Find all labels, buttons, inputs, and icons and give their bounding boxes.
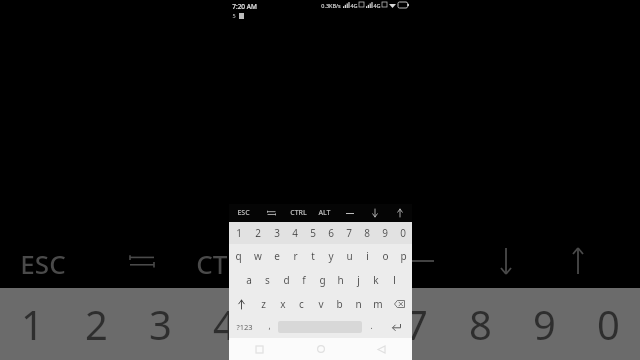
button[interactable]: 1 bbox=[229, 222, 248, 244]
button[interactable]: c bbox=[292, 292, 311, 316]
staticText: 4 bbox=[292, 226, 298, 240]
staticText: t bbox=[311, 249, 315, 263]
staticText: 5 bbox=[277, 297, 300, 351]
button[interactable]: b bbox=[330, 292, 349, 316]
button[interactable]: m bbox=[368, 292, 387, 316]
staticText: , bbox=[268, 320, 271, 331]
button[interactable]: d bbox=[277, 268, 295, 292]
button[interactable]: i bbox=[358, 244, 376, 268]
staticText: l bbox=[393, 273, 396, 287]
button[interactable]: 6 bbox=[322, 222, 340, 244]
button[interactable]: t bbox=[304, 244, 322, 268]
button[interactable]: w bbox=[248, 244, 267, 268]
button[interactable]: 9 bbox=[376, 222, 394, 244]
staticText: n bbox=[355, 297, 362, 311]
staticText: 4 bbox=[213, 297, 236, 351]
button[interactable]: o bbox=[376, 244, 394, 268]
staticText: e bbox=[274, 249, 280, 263]
button[interactable]: n bbox=[349, 292, 368, 316]
button[interactable]: k bbox=[367, 268, 385, 292]
button[interactable]: e bbox=[267, 244, 286, 268]
staticText: CTRL bbox=[196, 246, 258, 281]
button[interactable]: l bbox=[385, 268, 403, 292]
staticText: i bbox=[366, 249, 369, 263]
button[interactable]: Home bbox=[290, 338, 351, 360]
staticText: g bbox=[319, 273, 326, 287]
button[interactable]: q bbox=[229, 244, 248, 268]
button[interactable]: 5 bbox=[304, 222, 322, 244]
button[interactable]: CTRL bbox=[284, 204, 312, 222]
button[interactable]: ALT bbox=[312, 204, 337, 222]
staticText: 4G bbox=[350, 2, 358, 9]
button[interactable]: j bbox=[349, 268, 367, 292]
staticText: w bbox=[254, 249, 262, 263]
button[interactable]: Back bbox=[351, 338, 412, 360]
button[interactable]: 7 bbox=[340, 222, 358, 244]
button[interactable]: g bbox=[313, 268, 331, 292]
button[interactable]: . bbox=[362, 316, 380, 338]
staticText: s bbox=[265, 273, 270, 287]
staticText: 8 bbox=[364, 226, 370, 240]
staticText: d bbox=[283, 273, 290, 287]
button[interactable]: x bbox=[273, 292, 292, 316]
staticText: m bbox=[373, 297, 383, 311]
button[interactable]: Backspace bbox=[387, 292, 412, 316]
button[interactable]: Shift bbox=[229, 292, 254, 316]
button[interactable]: 3 bbox=[267, 222, 286, 244]
staticText: x bbox=[280, 297, 286, 311]
staticText: 0 bbox=[400, 226, 406, 240]
button[interactable]: Down bbox=[362, 204, 387, 222]
staticText: 5 bbox=[232, 12, 236, 19]
staticText: z bbox=[261, 297, 266, 311]
button[interactable]: z bbox=[254, 292, 273, 316]
staticText: 2 bbox=[85, 297, 108, 351]
button[interactable]: 4 bbox=[286, 222, 304, 244]
staticText: q bbox=[235, 249, 242, 263]
button[interactable]: Tab bbox=[258, 204, 284, 222]
staticText: p bbox=[400, 249, 407, 263]
staticText: 9 bbox=[533, 297, 556, 351]
button[interactable]: r bbox=[286, 244, 304, 268]
button[interactable]: 8 bbox=[358, 222, 376, 244]
button[interactable]: Enter bbox=[380, 316, 412, 338]
staticText: 4G bbox=[373, 2, 381, 9]
staticText: o bbox=[382, 249, 389, 263]
staticText: b bbox=[336, 297, 343, 311]
button[interactable]: 0 bbox=[394, 222, 412, 244]
staticText: y bbox=[328, 249, 334, 263]
button[interactable]: 2 bbox=[248, 222, 267, 244]
button[interactable]: y bbox=[322, 244, 340, 268]
button[interactable]: , bbox=[260, 316, 278, 338]
button[interactable]: v bbox=[311, 292, 330, 316]
staticText: v bbox=[318, 297, 324, 311]
button[interactable]: ?123 bbox=[229, 316, 260, 338]
staticText: ALT bbox=[318, 208, 331, 218]
staticText: 2 bbox=[255, 226, 261, 240]
staticText: u bbox=[346, 249, 353, 263]
staticText: 5 bbox=[310, 226, 316, 240]
staticText: 6 bbox=[328, 226, 334, 240]
button[interactable]: a bbox=[239, 268, 258, 292]
staticText: ESC bbox=[237, 208, 250, 218]
staticText: ?123 bbox=[236, 322, 253, 332]
staticText: j bbox=[357, 273, 360, 287]
staticText: 8 bbox=[469, 297, 492, 351]
staticText: a bbox=[246, 273, 252, 287]
button[interactable]: h bbox=[331, 268, 349, 292]
button[interactable]: Up bbox=[387, 204, 412, 222]
button[interactable]: u bbox=[340, 244, 358, 268]
staticText: f bbox=[302, 273, 306, 287]
button[interactable]: ESC bbox=[229, 204, 258, 222]
button[interactable]: Left bbox=[337, 204, 362, 222]
staticText: 7 bbox=[346, 226, 352, 240]
button[interactable]: s bbox=[258, 268, 277, 292]
staticText: 1 bbox=[236, 226, 242, 240]
staticText: ESC bbox=[20, 246, 66, 281]
staticText: 7:20 AM bbox=[232, 2, 257, 11]
button[interactable]: Recents bbox=[229, 338, 290, 360]
staticText: k bbox=[373, 273, 379, 287]
button[interactable]: p bbox=[394, 244, 412, 268]
button[interactable]: f bbox=[295, 268, 313, 292]
staticText: 3 bbox=[274, 226, 280, 240]
